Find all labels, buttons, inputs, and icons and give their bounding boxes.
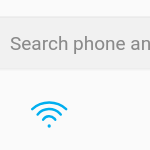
button[interactable]: Search phone and web	[0, 18, 150, 68]
staticText: Search phone and web	[10, 32, 150, 54]
other: Wi-Fi	[0, 0, 150, 150]
